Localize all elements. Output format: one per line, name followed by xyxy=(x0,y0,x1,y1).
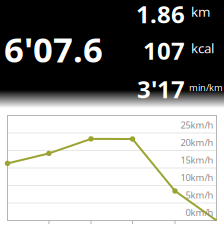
button[interactable]: 107 xyxy=(109,36,224,64)
staticText: 107 xyxy=(143,35,185,66)
staticText: min/km xyxy=(189,81,223,94)
staticText: 5km/h xyxy=(185,189,213,201)
staticText: 6'07.6 xyxy=(4,26,103,72)
staticText: 3'17 xyxy=(137,73,185,105)
staticText: 20km/h xyxy=(180,136,213,149)
staticText: 25km/h xyxy=(180,119,213,131)
staticText: 1.86 xyxy=(136,0,185,30)
staticText: 0km/h xyxy=(185,206,213,219)
button[interactable]: 6'07.6 xyxy=(4,30,110,68)
staticText: kcal xyxy=(191,39,214,57)
staticText: km xyxy=(191,3,210,20)
button[interactable]: 1.86 xyxy=(109,0,224,28)
button[interactable]: 3'17 xyxy=(109,75,224,103)
staticText: 15km/h xyxy=(180,154,213,166)
button[interactable]: Speed chart xyxy=(0,0,224,226)
staticText: 10km/h xyxy=(180,171,213,184)
